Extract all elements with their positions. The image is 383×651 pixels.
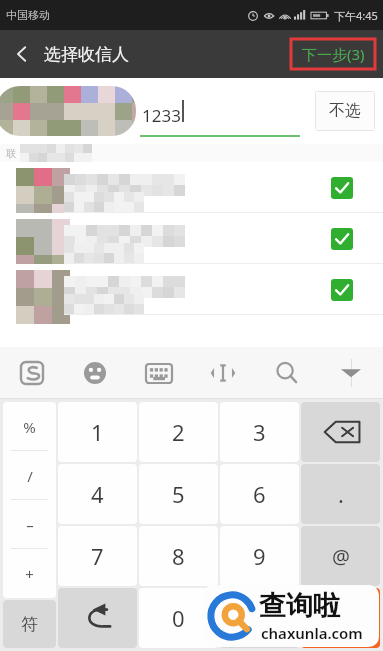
button[interactable]: Emoji (63, 347, 127, 399)
staticText: 下一步(3) (302, 44, 365, 64)
staticText: 4 (91, 479, 104, 509)
staticText: 2 (172, 417, 185, 447)
other: Selected (331, 177, 353, 199)
staticText: / (27, 466, 33, 486)
button[interactable]: 9 (220, 526, 299, 586)
staticText: . (338, 479, 344, 509)
staticText: 5 (172, 479, 185, 509)
staticText: 9 (253, 541, 266, 571)
button[interactable]: Selected (0, 264, 383, 315)
button[interactable]: 1 (58, 402, 137, 462)
staticText: chaxunla.com (261, 623, 363, 643)
other: Selected (331, 228, 353, 250)
button[interactable]: % (3, 402, 56, 451)
button[interactable]: 3 (220, 402, 299, 462)
button[interactable]: Back (0, 32, 44, 76)
staticText: % (23, 417, 36, 437)
staticText: – (26, 515, 34, 535)
button[interactable]: / (3, 451, 56, 500)
staticText: 选择收信人 (44, 44, 129, 65)
button[interactable]: + (3, 549, 56, 598)
button[interactable]: Selected (0, 162, 383, 213)
button[interactable]: 不选 (315, 91, 375, 131)
button[interactable]: Undo (58, 588, 137, 648)
button[interactable]: 7 (58, 526, 137, 586)
button[interactable]: 下一步(3) (291, 39, 375, 69)
button[interactable]: 0 (139, 588, 218, 648)
button[interactable]: 5 (139, 464, 218, 524)
staticText: 不选 (329, 101, 361, 121)
button[interactable]: Selected (0, 213, 383, 264)
button[interactable]: Keyboard layout (127, 347, 191, 399)
staticText: 符 (21, 614, 38, 635)
button[interactable]: Backspace (301, 402, 380, 462)
button[interactable]: 符 (3, 600, 56, 648)
other: Selected (331, 279, 353, 301)
button[interactable]: 6 (220, 464, 299, 524)
staticText: 中国移动 (6, 8, 50, 22)
button[interactable]: 8 (139, 526, 218, 586)
staticText: 3 (253, 417, 266, 447)
staticText: 6 (253, 479, 266, 509)
button[interactable]: – (3, 500, 56, 549)
button[interactable]: . (301, 464, 380, 524)
staticText: + (25, 564, 34, 584)
button[interactable]: Sogou input (0, 347, 63, 399)
button[interactable]: 4 (58, 464, 137, 524)
staticText: 0 (172, 603, 185, 633)
staticText: 查询啦 (259, 589, 340, 623)
staticText: 7 (91, 541, 104, 571)
button[interactable]: @ (301, 526, 380, 586)
button[interactable]: Search (255, 347, 319, 399)
button[interactable]: Move cursor (191, 347, 255, 399)
staticText: @ (332, 543, 350, 570)
button[interactable] (220, 588, 299, 648)
staticText: 8 (172, 541, 185, 571)
button[interactable]: Enter (301, 588, 380, 648)
staticText: 下午4:45 (334, 8, 378, 23)
staticText: 联 (6, 147, 16, 160)
staticText: 1 (91, 417, 104, 447)
button[interactable]: 2 (139, 402, 218, 462)
button[interactable]: Hide keyboard (319, 347, 383, 399)
staticText: 1233 (142, 104, 181, 127)
